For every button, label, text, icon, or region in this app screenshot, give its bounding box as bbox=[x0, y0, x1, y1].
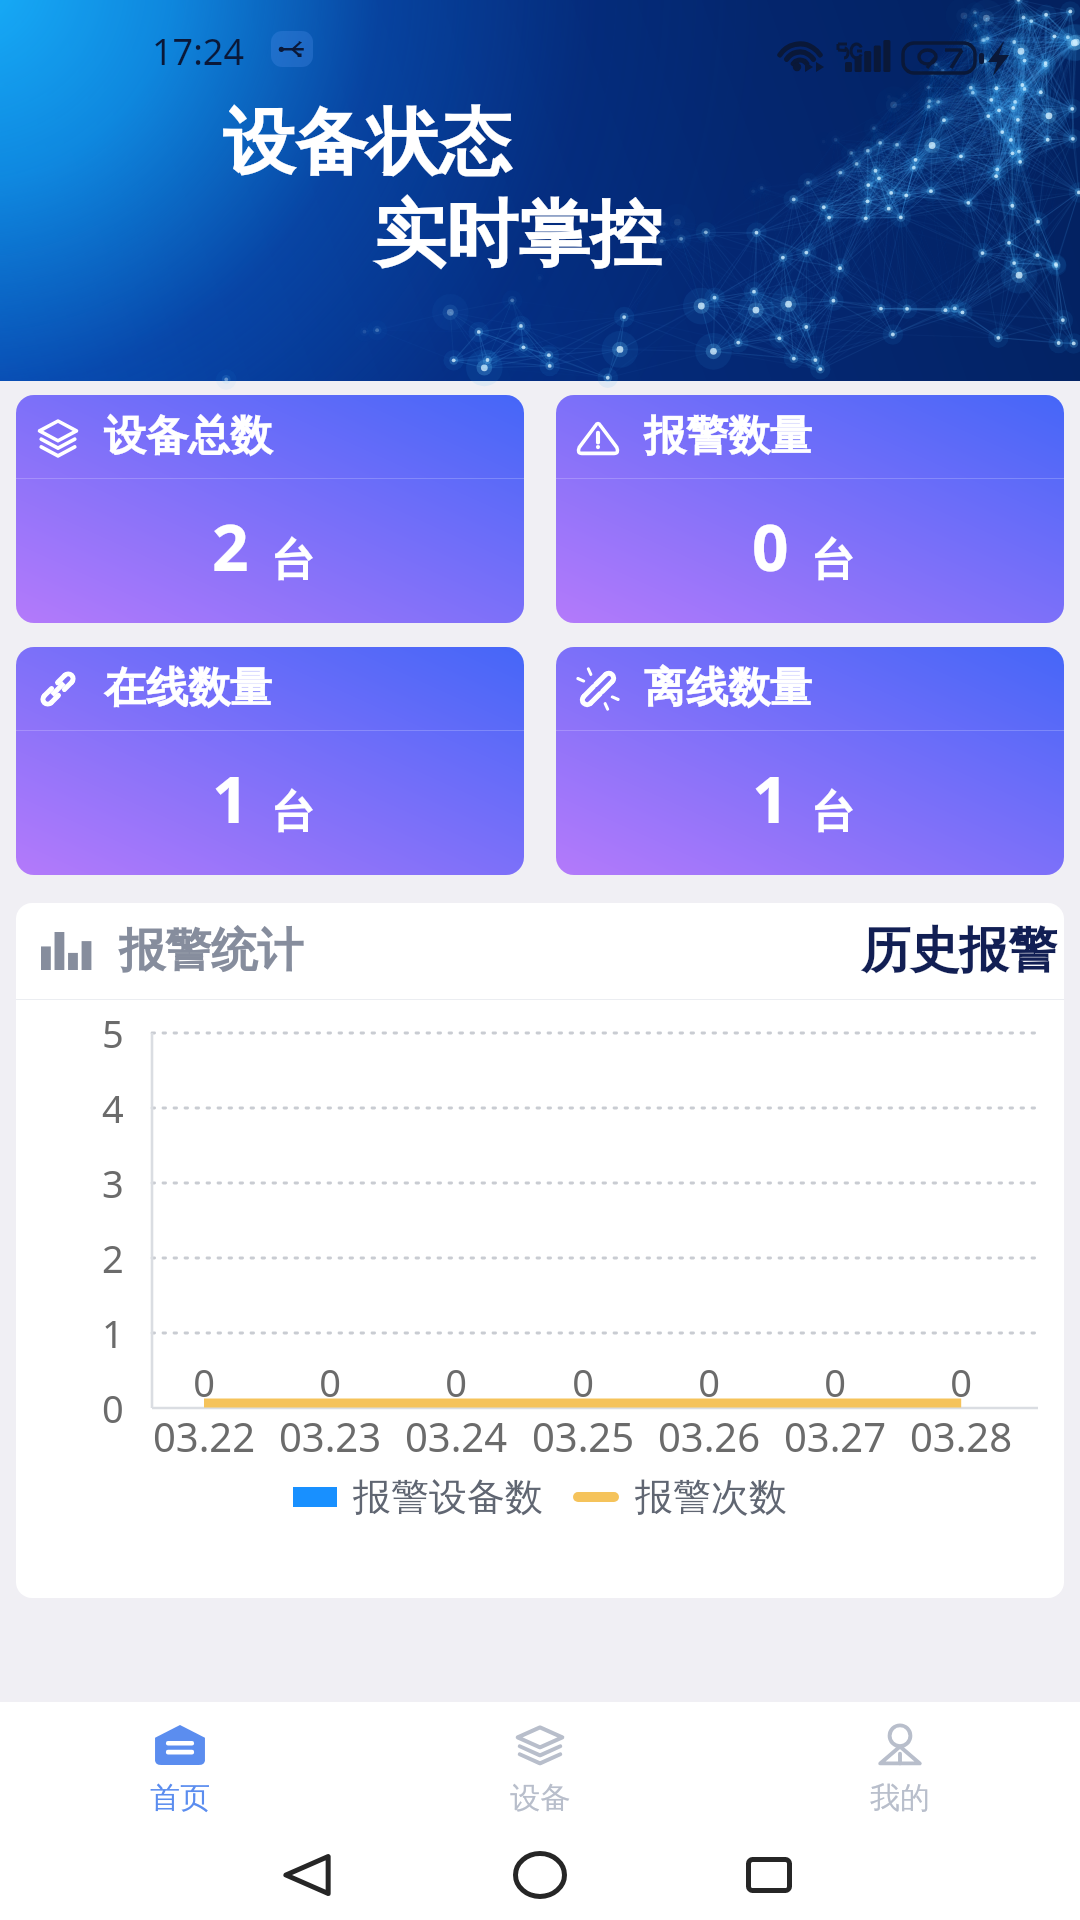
staticText: 03.25 bbox=[503, 1409, 663, 1463]
button[interactable]: 报警数量 bbox=[556, 395, 1064, 623]
staticText: 台 bbox=[811, 533, 855, 588]
staticText: 报警设备数 bbox=[353, 1473, 543, 1521]
staticText: 03.28 bbox=[881, 1409, 1041, 1463]
staticText: 0 bbox=[881, 1356, 1041, 1408]
staticText: 03.26 bbox=[629, 1409, 789, 1463]
staticText: 03.27 bbox=[755, 1409, 915, 1463]
button[interactable]: Back bbox=[262, 1841, 354, 1909]
staticText: 0 bbox=[102, 1382, 124, 1434]
staticText: 0 bbox=[752, 503, 789, 590]
staticText: 台 bbox=[271, 533, 315, 588]
staticText: 0 bbox=[250, 1356, 410, 1408]
staticText: 17:24 bbox=[152, 27, 245, 76]
button[interactable]: 我的 bbox=[720, 1702, 1080, 1830]
staticText: 在线数量 bbox=[104, 662, 272, 715]
staticText: 历史报警 bbox=[861, 920, 1057, 982]
staticText: 0 bbox=[503, 1356, 663, 1408]
staticText: 设备状态 bbox=[223, 98, 511, 189]
button[interactable]: 离线数量 bbox=[556, 647, 1064, 875]
staticText: 0 bbox=[124, 1356, 284, 1408]
staticText: 5 bbox=[102, 1007, 124, 1059]
button[interactable]: 设备 bbox=[360, 1702, 720, 1830]
staticText: 03.24 bbox=[376, 1409, 536, 1463]
staticText: 首页 bbox=[150, 1779, 210, 1817]
staticText: 0 bbox=[755, 1356, 915, 1408]
staticText: 报警次数 bbox=[635, 1473, 787, 1521]
button[interactable]: Home bbox=[494, 1841, 586, 1909]
button[interactable]: 在线数量 bbox=[16, 647, 524, 875]
button[interactable]: 设备总数 bbox=[16, 395, 524, 623]
staticText: 1 bbox=[212, 755, 249, 842]
staticText: 2 bbox=[102, 1232, 124, 1284]
staticText: 离线数量 bbox=[644, 662, 812, 715]
staticText: 4 bbox=[102, 1082, 124, 1134]
staticText: 3 bbox=[102, 1157, 124, 1209]
staticText: 03.22 bbox=[124, 1409, 284, 1463]
button[interactable]: 首页 bbox=[0, 1702, 360, 1830]
staticText: 03.23 bbox=[250, 1409, 410, 1463]
staticText: 0 bbox=[376, 1356, 536, 1408]
staticText: 台 bbox=[811, 785, 855, 840]
staticText: 报警数量 bbox=[644, 410, 812, 463]
staticText: 1 bbox=[752, 755, 789, 842]
staticText: 2 bbox=[212, 503, 249, 590]
button[interactable]: 历史报警 bbox=[855, 910, 1063, 992]
staticText: 报警统计 bbox=[119, 922, 303, 980]
staticText: 0 bbox=[629, 1356, 789, 1408]
staticText: 设备 bbox=[510, 1779, 570, 1817]
staticText: 1 bbox=[102, 1307, 124, 1359]
button[interactable]: Recent apps bbox=[723, 1841, 815, 1909]
staticText: 设备总数 bbox=[104, 410, 272, 463]
staticText: 我的 bbox=[870, 1779, 930, 1817]
staticText: 实时掌控 bbox=[374, 190, 662, 281]
staticText: 台 bbox=[271, 785, 315, 840]
